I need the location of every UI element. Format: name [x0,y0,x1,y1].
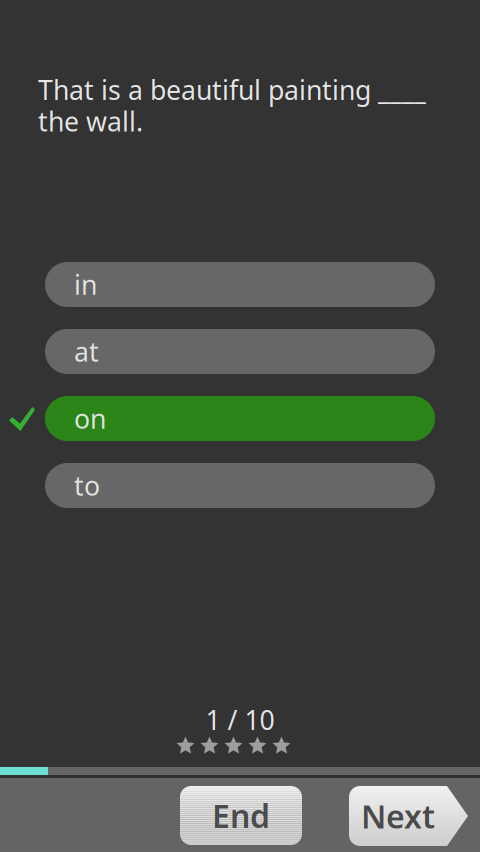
staticText: Next [361,795,435,837]
button[interactable]: on [45,396,435,441]
button[interactable]: in [45,262,435,307]
button[interactable]: at [45,329,435,374]
staticText: on [74,401,106,436]
staticText: End [212,794,270,837]
staticText: 1 / 10 [205,702,274,737]
button[interactable]: to [45,463,435,508]
staticText: the wall. [38,103,143,139]
button[interactable]: End [180,786,302,845]
staticText: to [74,468,100,503]
staticText: at [74,334,99,369]
staticText: That is a beautiful painting ____ [38,72,426,107]
staticText: in [74,267,97,302]
button[interactable]: Next [349,786,468,846]
